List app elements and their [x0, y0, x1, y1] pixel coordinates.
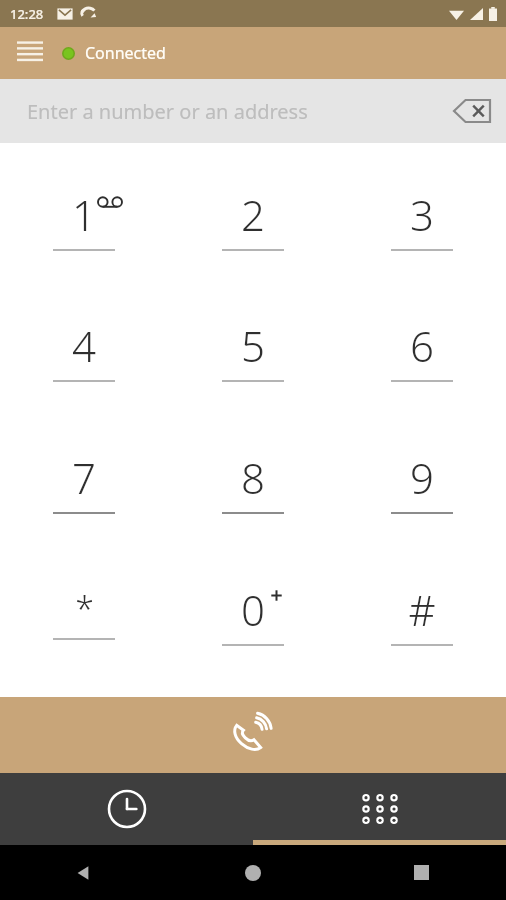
button[interactable]: * [0, 547, 168, 679]
button[interactable]: 3 [337, 153, 506, 284]
button[interactable]: Enter a number or an address [0, 79, 506, 143]
button[interactable]: Call history [0, 773, 253, 845]
staticText: # [408, 581, 436, 638]
button[interactable]: Dialpad [253, 773, 506, 845]
staticText: 2 [241, 186, 265, 243]
staticText: 0 [241, 581, 265, 638]
staticText: 8 [241, 449, 265, 506]
button[interactable]: Home [168, 845, 337, 900]
button[interactable]: Backspace [448, 87, 496, 135]
button[interactable]: 5 [168, 284, 337, 415]
staticText: 12:28 [10, 5, 44, 23]
button[interactable]: Open navigation menu [8, 31, 52, 75]
staticText: 3 [410, 186, 434, 243]
button[interactable]: 7 [0, 415, 168, 547]
button[interactable]: # [337, 547, 506, 679]
button[interactable]: 4 [0, 284, 168, 415]
staticText: Enter a number or an address [27, 98, 308, 125]
button[interactable]: 8 [168, 415, 337, 547]
button[interactable]: 9 [337, 415, 506, 547]
staticText: 9 [410, 449, 434, 506]
button[interactable]: 1 [0, 153, 168, 284]
staticText: Connected [85, 42, 166, 64]
button[interactable]: 0 [168, 547, 337, 679]
button[interactable]: Call [0, 697, 506, 773]
button[interactable]: 2 [168, 153, 337, 284]
button[interactable]: 6 [337, 284, 506, 415]
staticText: 6 [410, 317, 434, 374]
staticText: 4 [72, 317, 96, 374]
staticText: * [75, 586, 94, 632]
staticText: 7 [72, 449, 96, 506]
staticText: 1 [72, 186, 96, 243]
button[interactable]: Back [0, 845, 168, 900]
staticText: 5 [241, 317, 265, 374]
button[interactable]: Recent apps [337, 845, 506, 900]
